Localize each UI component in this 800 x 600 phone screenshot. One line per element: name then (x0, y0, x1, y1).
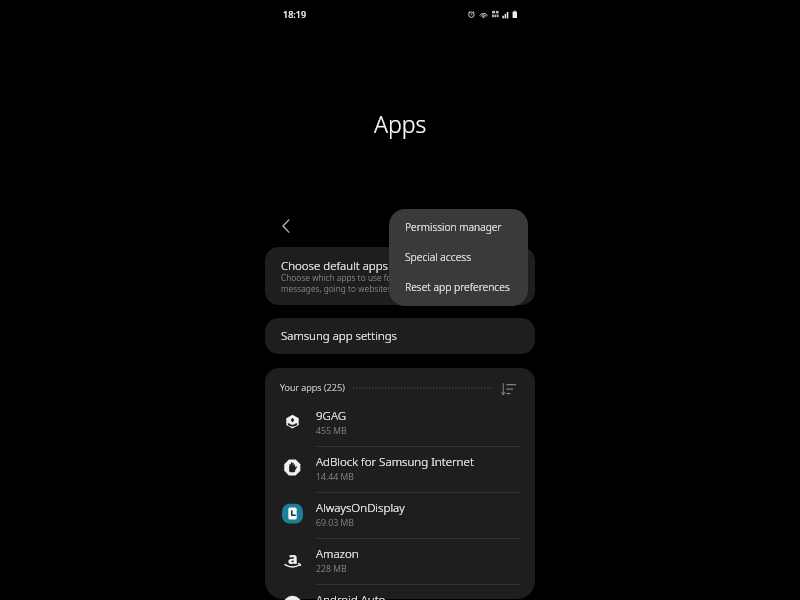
staticText: Your apps (225) (280, 381, 345, 394)
button[interactable]: Samsung app settings (265, 318, 535, 354)
staticText: Choose default apps (281, 258, 388, 274)
staticText: 455 MB (316, 425, 347, 437)
staticText: Amazon (316, 546, 359, 562)
staticText: 69.03 MB (316, 517, 354, 529)
button[interactable]: Sort (496, 377, 520, 401)
staticText: Permission manager (405, 220, 502, 234)
staticText: 228 MB (316, 563, 347, 575)
staticText: Choose which apps to use for making call… (281, 272, 480, 284)
staticText: Samsung app settings (281, 328, 397, 344)
button[interactable]: Navigate up (272, 212, 300, 240)
button[interactable]: AlwaysOnDisplay (265, 491, 535, 539)
staticText: 9GAG (316, 408, 347, 424)
button[interactable]: Android Auto (265, 583, 535, 600)
staticText: 14.44 MB (316, 471, 354, 483)
staticText: AlwaysOnDisplay (316, 500, 405, 516)
button[interactable]: Permission manager (389, 212, 528, 242)
button[interactable]: 9GAG (265, 399, 535, 447)
staticText: messages, going to websites and more (281, 283, 432, 295)
button[interactable]: AdBlock for Samsung Internet (265, 445, 535, 493)
staticText: 18:19 (283, 8, 307, 20)
staticText: Apps (374, 108, 427, 139)
button[interactable]: Reset app preferences (389, 272, 528, 302)
staticText: a (288, 547, 298, 568)
staticText: Reset app preferences (405, 280, 510, 294)
staticText: Special access (405, 250, 471, 264)
button[interactable]: a (265, 537, 535, 585)
button[interactable]: Special access (389, 242, 528, 272)
staticText: Android Auto (316, 592, 386, 600)
staticText: AdBlock for Samsung Internet (316, 454, 474, 470)
button[interactable]: Choose default apps (265, 247, 535, 305)
